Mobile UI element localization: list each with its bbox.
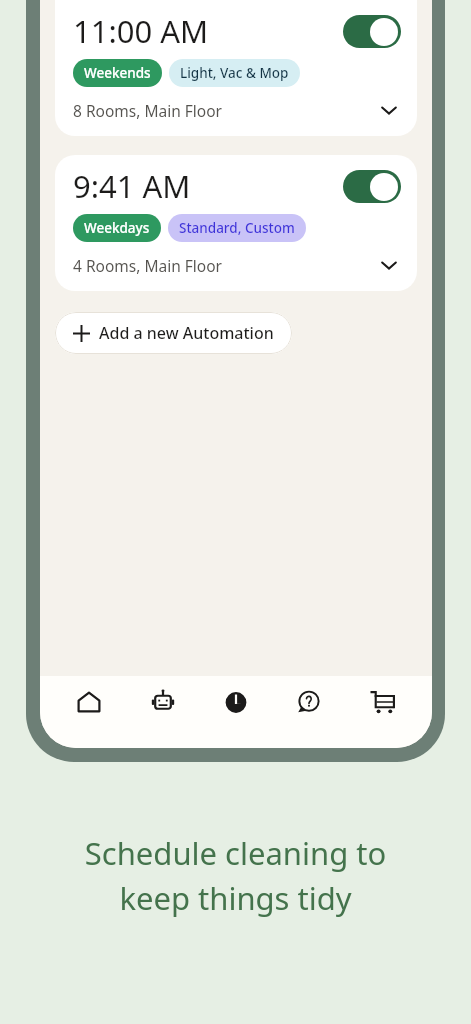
button[interactable]: Home [65,678,113,726]
button[interactable]: Weekends [73,59,162,87]
button[interactable]: Toggle automation [343,170,401,203]
staticText: Schedule cleaning to keep things tidy [0,832,471,919]
button[interactable]: Expand [377,98,401,122]
button[interactable]: 9:41 AM [55,155,417,291]
staticText: Light, Vac & Mop [180,64,289,82]
staticText: 11:00 AM [73,10,209,52]
staticText: 8 Rooms, Main Floor [73,100,222,121]
staticText: Add a new Automation [99,322,274,344]
button[interactable]: Robot [139,678,187,726]
button[interactable]: Help [285,678,333,726]
button[interactable]: Expand [377,253,401,277]
button[interactable]: Light, Vac & Mop [169,59,300,87]
button[interactable]: 11:00 AM [55,0,417,136]
staticText: 9:41 AM [73,165,191,207]
staticText: 4 Rooms, Main Floor [73,255,222,276]
button[interactable]: Weekdays [73,214,161,242]
button[interactable]: Standard, Custom [168,214,306,242]
button[interactable]: Add a new Automation [55,312,292,354]
button[interactable]: Toggle automation [343,15,401,48]
staticText: Weekends [84,64,151,82]
button[interactable]: Shop [359,678,407,726]
staticText: Weekdays [84,219,150,237]
button[interactable]: Schedule [212,678,260,726]
staticText: Standard, Custom [179,219,295,237]
